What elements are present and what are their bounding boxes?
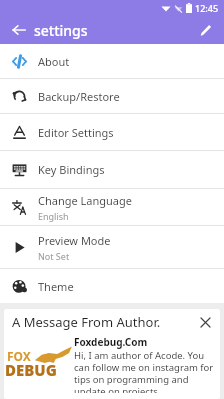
- staticText: Hi, I am author of Acode. You can follow…: [74, 349, 214, 393]
- button[interactable]: Backup/Restore: [0, 79, 224, 113]
- staticText: Change Language: [38, 193, 132, 208]
- button[interactable]: A Message From Author.: [4, 309, 220, 399]
- button[interactable]: Editor Settings: [0, 114, 224, 150]
- staticText: Editor Settings: [38, 125, 114, 140]
- staticText: Key Bindings: [38, 162, 105, 177]
- staticText: A Message From Author.: [12, 313, 196, 331]
- button[interactable]: Edit: [194, 19, 216, 41]
- button[interactable]: About: [0, 44, 224, 78]
- staticText: 12:45: [195, 2, 219, 14]
- staticText: Not Set: [38, 250, 70, 262]
- button[interactable]: Close: [196, 313, 214, 331]
- staticText: settings: [34, 21, 88, 40]
- staticText: Theme: [38, 279, 74, 294]
- staticText: FOX: [7, 348, 31, 364]
- staticText: English: [38, 210, 69, 222]
- staticText: DEBUG: [5, 360, 57, 380]
- button[interactable]: Back: [8, 19, 30, 41]
- button[interactable]: Key Bindings: [0, 151, 224, 188]
- staticText: About: [38, 54, 70, 69]
- button[interactable]: Preview Mode: [0, 226, 224, 268]
- button[interactable]: Theme: [0, 269, 224, 303]
- staticText: Backup/Restore: [38, 89, 120, 104]
- staticText: Preview Mode: [38, 233, 111, 248]
- staticText: Foxdebug.Com: [74, 335, 148, 349]
- button[interactable]: Change Language: [0, 189, 224, 225]
